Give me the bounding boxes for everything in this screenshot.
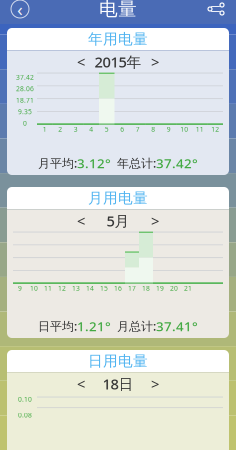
- staticText: 3: [74, 125, 78, 134]
- button[interactable]: Next: [144, 376, 166, 392]
- staticText: 月总计:: [117, 318, 156, 334]
- staticText: 年总计:: [117, 155, 156, 171]
- staticText: 日平均:: [38, 318, 77, 334]
- staticText: 9: [18, 284, 22, 293]
- staticText: 2015年: [94, 52, 141, 71]
- button[interactable]: Next: [144, 54, 166, 70]
- staticText: 11: [44, 284, 52, 293]
- staticText: 37.41°: [156, 317, 198, 335]
- staticText: 1.21°: [77, 317, 111, 335]
- staticText: 13: [72, 284, 80, 293]
- staticText: <: [77, 374, 85, 393]
- staticText: <: [77, 211, 85, 230]
- staticText: 37.42°: [156, 154, 198, 172]
- staticText: <: [77, 52, 85, 71]
- staticText: 11: [196, 125, 204, 134]
- staticText: 日用电量: [88, 352, 148, 370]
- staticText: 0.10: [18, 395, 32, 404]
- staticText: >: [151, 211, 159, 230]
- staticText: 14: [86, 284, 94, 293]
- staticText: 0.08: [18, 411, 32, 419]
- staticText: 10: [180, 125, 188, 134]
- staticText: 18: [142, 284, 150, 293]
- staticText: 9: [167, 125, 171, 134]
- button[interactable]: 日用电量: [7, 350, 229, 372]
- staticText: 1: [43, 125, 47, 134]
- staticText: 16: [114, 284, 122, 293]
- button[interactable]: Back: [0, 0, 40, 24]
- staticText: >: [151, 52, 159, 71]
- staticText: 3.12°: [77, 154, 111, 172]
- staticText: 19: [156, 284, 164, 293]
- staticText: 8: [151, 125, 155, 134]
- button[interactable]: 年用电量: [7, 28, 229, 50]
- staticText: 月平均:: [38, 155, 77, 171]
- staticText: 18日: [102, 374, 133, 393]
- staticText: 5月: [106, 211, 129, 230]
- staticText: 年用电量: [88, 30, 148, 48]
- staticText: 7: [136, 125, 140, 134]
- staticText: 12: [211, 125, 219, 134]
- staticText: ‹: [17, 0, 23, 21]
- staticText: 4: [89, 125, 93, 134]
- button[interactable]: Previous: [70, 213, 92, 229]
- staticText: 20: [170, 284, 178, 293]
- staticText: >: [151, 374, 159, 393]
- button[interactable]: 月用电量: [7, 187, 229, 209]
- button[interactable]: Previous: [70, 54, 92, 70]
- staticText: 月用电量: [88, 189, 148, 207]
- button[interactable]: Next: [144, 213, 166, 229]
- staticText: 18.71: [16, 96, 34, 105]
- staticText: 37.42: [16, 73, 34, 82]
- staticText: 12: [58, 284, 66, 293]
- staticText: 9.35: [18, 107, 32, 116]
- staticText: 17: [128, 284, 136, 293]
- staticText: 15: [100, 284, 108, 293]
- staticText: 28.06: [16, 84, 34, 93]
- button[interactable]: Previous: [70, 376, 92, 392]
- button[interactable]: Share: [196, 0, 236, 24]
- staticText: 10: [30, 284, 38, 293]
- staticText: 21: [184, 284, 192, 293]
- staticText: 电量: [99, 0, 137, 20]
- staticText: 0: [23, 119, 27, 128]
- staticText: 5: [105, 125, 109, 134]
- staticText: 2: [58, 125, 62, 134]
- staticText: 6: [120, 125, 124, 134]
